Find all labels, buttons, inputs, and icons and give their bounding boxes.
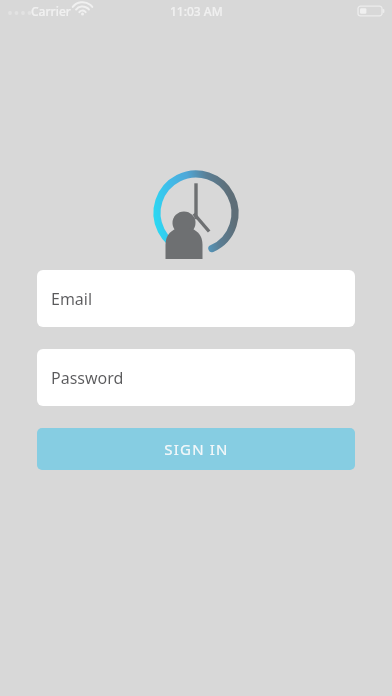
staticText: 11:03 AM [170,3,223,19]
button[interactable]: Password [37,349,355,406]
staticText: Carrier [31,3,71,19]
staticText: Password [51,367,124,389]
button[interactable]: Email [37,270,355,327]
button[interactable]: SIGN IN [37,428,355,470]
staticText: Email [51,288,93,310]
staticText: SIGN IN [164,439,229,459]
